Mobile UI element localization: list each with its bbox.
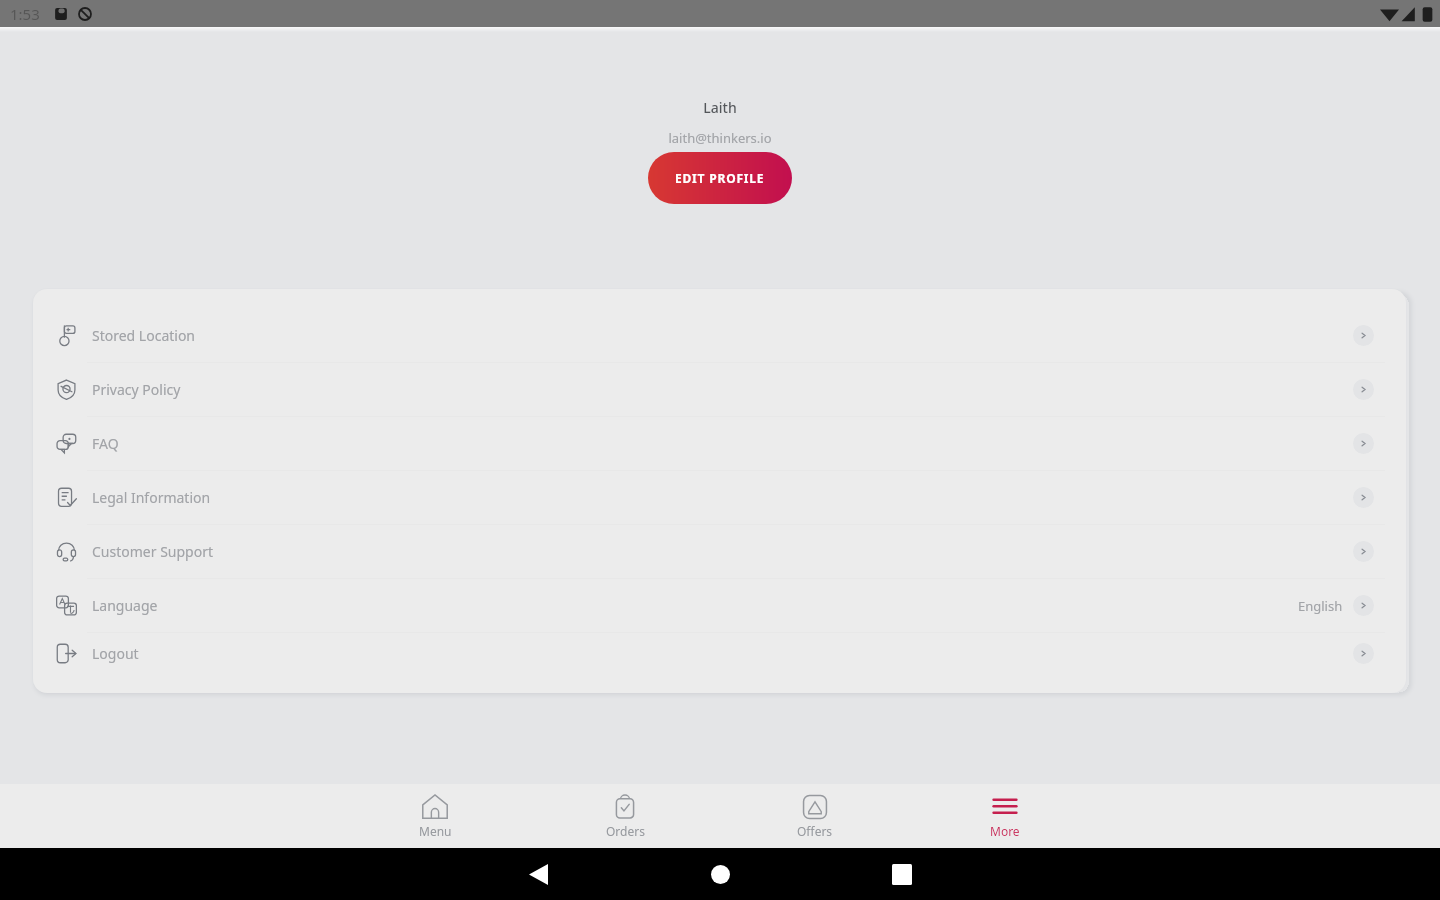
button[interactable]: Back [447, 848, 629, 900]
staticText: Stored Location [92, 326, 196, 345]
staticText: 1:53 [10, 4, 40, 24]
button[interactable]: Menu [340, 784, 530, 848]
staticText: Privacy Policy [92, 380, 181, 399]
staticText: laith@thinkers.io [668, 129, 772, 147]
button[interactable]: Customer Support [33, 525, 1406, 578]
button[interactable]: Orders [530, 784, 720, 848]
staticText: Customer Support [92, 542, 214, 561]
staticText: EDIT PROFILE [675, 170, 765, 186]
staticText: Language [92, 596, 158, 615]
staticText: Legal Information [92, 488, 211, 507]
button[interactable]: Recents [811, 848, 993, 900]
button[interactable]: Legal Information [33, 471, 1406, 524]
button[interactable]: More [910, 784, 1100, 848]
button[interactable]: Privacy Policy [33, 363, 1406, 416]
button[interactable]: Logout [33, 633, 1406, 674]
staticText: Orders [606, 823, 645, 839]
button[interactable]: Offers [720, 784, 910, 848]
button[interactable]: Language [33, 579, 1406, 632]
staticText: Offers [797, 823, 833, 839]
staticText: Menu [419, 823, 452, 839]
staticText: More [990, 823, 1020, 839]
button[interactable]: EDIT PROFILE [648, 152, 792, 204]
staticText: English [1298, 597, 1343, 615]
button[interactable]: FAQ [33, 417, 1406, 470]
staticText: FAQ [92, 434, 119, 453]
button[interactable]: Stored Location [33, 309, 1406, 362]
staticText: Logout [92, 644, 139, 663]
button[interactable]: Home [629, 848, 811, 900]
staticText: Laith [703, 98, 737, 117]
